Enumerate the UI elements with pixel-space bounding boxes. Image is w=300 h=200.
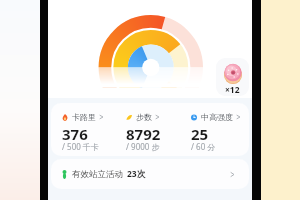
button[interactable]: 卡路里	[62, 108, 126, 156]
button[interactable]: 中高强度	[191, 108, 249, 156]
staticText: 8792	[126, 124, 161, 144]
staticText: ×12	[225, 84, 240, 96]
button[interactable]: 步数	[126, 108, 191, 156]
staticText: 376	[62, 124, 88, 144]
staticText: / 500 千卡	[62, 141, 99, 152]
staticText: 23次	[127, 168, 146, 180]
staticText: / 60 分	[191, 141, 216, 152]
staticText: 25	[191, 124, 209, 144]
button[interactable]: 有效站立活动	[51, 159, 249, 189]
staticText: / 9000 步	[126, 141, 160, 152]
staticText: 有效站立活动	[72, 169, 123, 180]
button[interactable]: Donut rewards	[216, 58, 249, 96]
staticText: 卡路里	[72, 112, 96, 122]
staticText: 步数	[136, 112, 152, 122]
staticText: 中高强度	[201, 112, 233, 122]
